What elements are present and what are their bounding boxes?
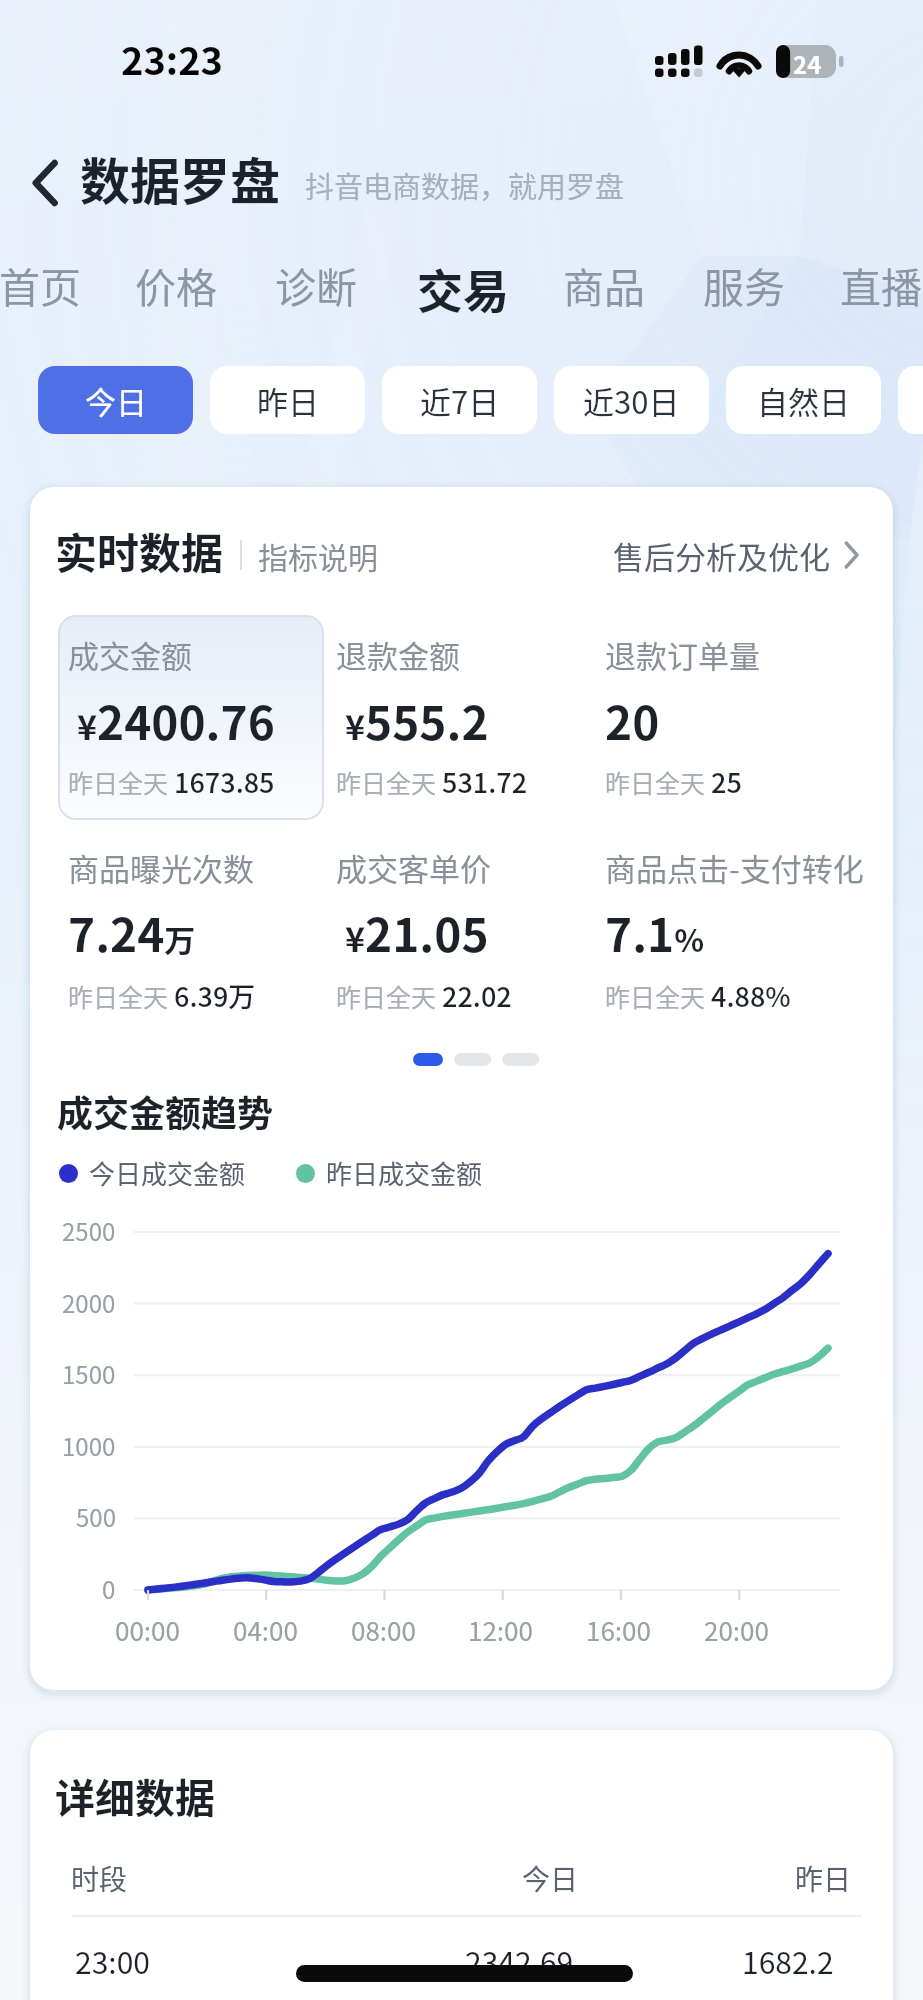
staticText: 退款金额 [336, 632, 460, 677]
button[interactable]: 指标说明 [258, 531, 378, 579]
button[interactable]: Back [12, 152, 80, 214]
staticText: 近30日 [583, 378, 680, 423]
staticText: 商品 [563, 255, 645, 314]
button[interactable] [58, 615, 324, 820]
staticText: 今日 [522, 1858, 579, 1899]
staticText: 直播 [840, 255, 922, 314]
staticText: 昨日全天 531.72 [336, 762, 528, 801]
staticText: 24 [793, 46, 822, 81]
staticText: 2500 [62, 1213, 116, 1248]
button[interactable]: 商品 [563, 249, 645, 319]
button[interactable]: 服务 [703, 249, 785, 319]
button[interactable]: 价格 [135, 249, 217, 319]
button[interactable]: 售后分析及优化 [613, 529, 866, 581]
staticText: 昨日 [257, 378, 319, 423]
button[interactable]: 首页 [0, 249, 81, 319]
button[interactable]: 直播 [840, 249, 922, 319]
staticText: 昨日全天 4.88% [605, 976, 791, 1015]
staticText: 04:00 [233, 1611, 298, 1649]
staticText: 时段 [71, 1858, 128, 1899]
staticText: 23:00 [75, 1939, 150, 1982]
staticText: 指标说明 [258, 534, 378, 577]
staticText: ¥21.05 [345, 899, 489, 966]
staticText: 交易 [417, 255, 509, 322]
staticText: 2342.69 [465, 1939, 574, 1982]
button[interactable]: 诊断 [275, 249, 357, 319]
button[interactable]: 实时数据 [55, 518, 224, 582]
staticText: 商品曝光次数 [68, 845, 254, 890]
staticText: 23:23 [121, 31, 224, 86]
staticText: ¥555.2 [345, 687, 489, 754]
staticText: 20:00 [704, 1611, 769, 1649]
staticText: ¥2400.76 [77, 687, 275, 754]
staticText: 抖音电商数据，就用罗盘 [305, 164, 625, 206]
button[interactable]: 今日 [38, 366, 193, 434]
staticText: 1500 [62, 1356, 116, 1391]
staticText: 08:00 [351, 1611, 416, 1649]
staticText: 价格 [135, 255, 217, 314]
staticText: 500 [76, 1499, 116, 1534]
staticText: 昨日全天 6.39万 [68, 976, 256, 1015]
staticText: 诊断 [275, 255, 357, 314]
staticText: 昨日全天 25 [605, 762, 742, 801]
staticText: 昨日全天 1673.85 [68, 762, 275, 801]
staticText: 近7日 [420, 378, 500, 423]
staticText: 首页 [0, 255, 81, 314]
staticText: 商品点击-支付转化 [605, 845, 864, 890]
button[interactable]: 近30日 [554, 366, 709, 434]
button[interactable] [30, 1926, 893, 2000]
staticText: 昨日全天 22.02 [336, 976, 512, 1015]
staticText: 售后分析及优化 [613, 533, 830, 578]
staticText: 数据罗盘 [80, 142, 280, 214]
button[interactable]: 昨日 [210, 366, 365, 434]
staticText: 7.1% [605, 899, 705, 966]
staticText: 今日成交金额 [89, 1154, 246, 1192]
staticText: 详细数据 [55, 1767, 215, 1825]
staticText: 今日 [85, 378, 147, 423]
button[interactable]: 自然日 [726, 366, 881, 434]
staticText: 2000 [62, 1285, 116, 1320]
staticText: 退款订单量 [605, 632, 760, 677]
button[interactable]: 近7日 [382, 366, 537, 434]
staticText: 成交客单价 [336, 845, 491, 890]
staticText: 成交金额 [68, 632, 192, 677]
staticText: 实时数据 [55, 520, 224, 581]
staticText: 20 [605, 687, 660, 754]
staticText: 1682.2 [742, 1939, 834, 1982]
staticText: 7.24万 [68, 899, 196, 966]
staticText: 0 [102, 1571, 116, 1606]
button[interactable]: 自定义 [898, 366, 923, 434]
staticText: 昨日成交金额 [326, 1154, 483, 1192]
staticText: 昨日 [795, 1858, 852, 1899]
staticText: 服务 [703, 255, 785, 314]
button[interactable]: 交易 [417, 253, 509, 323]
staticText: 自然日 [757, 378, 850, 423]
staticText: 成交金额趋势 [57, 1085, 274, 1137]
staticText: 16:00 [586, 1611, 651, 1649]
staticText: 00:00 [115, 1611, 180, 1649]
staticText: 1000 [62, 1428, 116, 1463]
staticText: 12:00 [468, 1611, 533, 1649]
